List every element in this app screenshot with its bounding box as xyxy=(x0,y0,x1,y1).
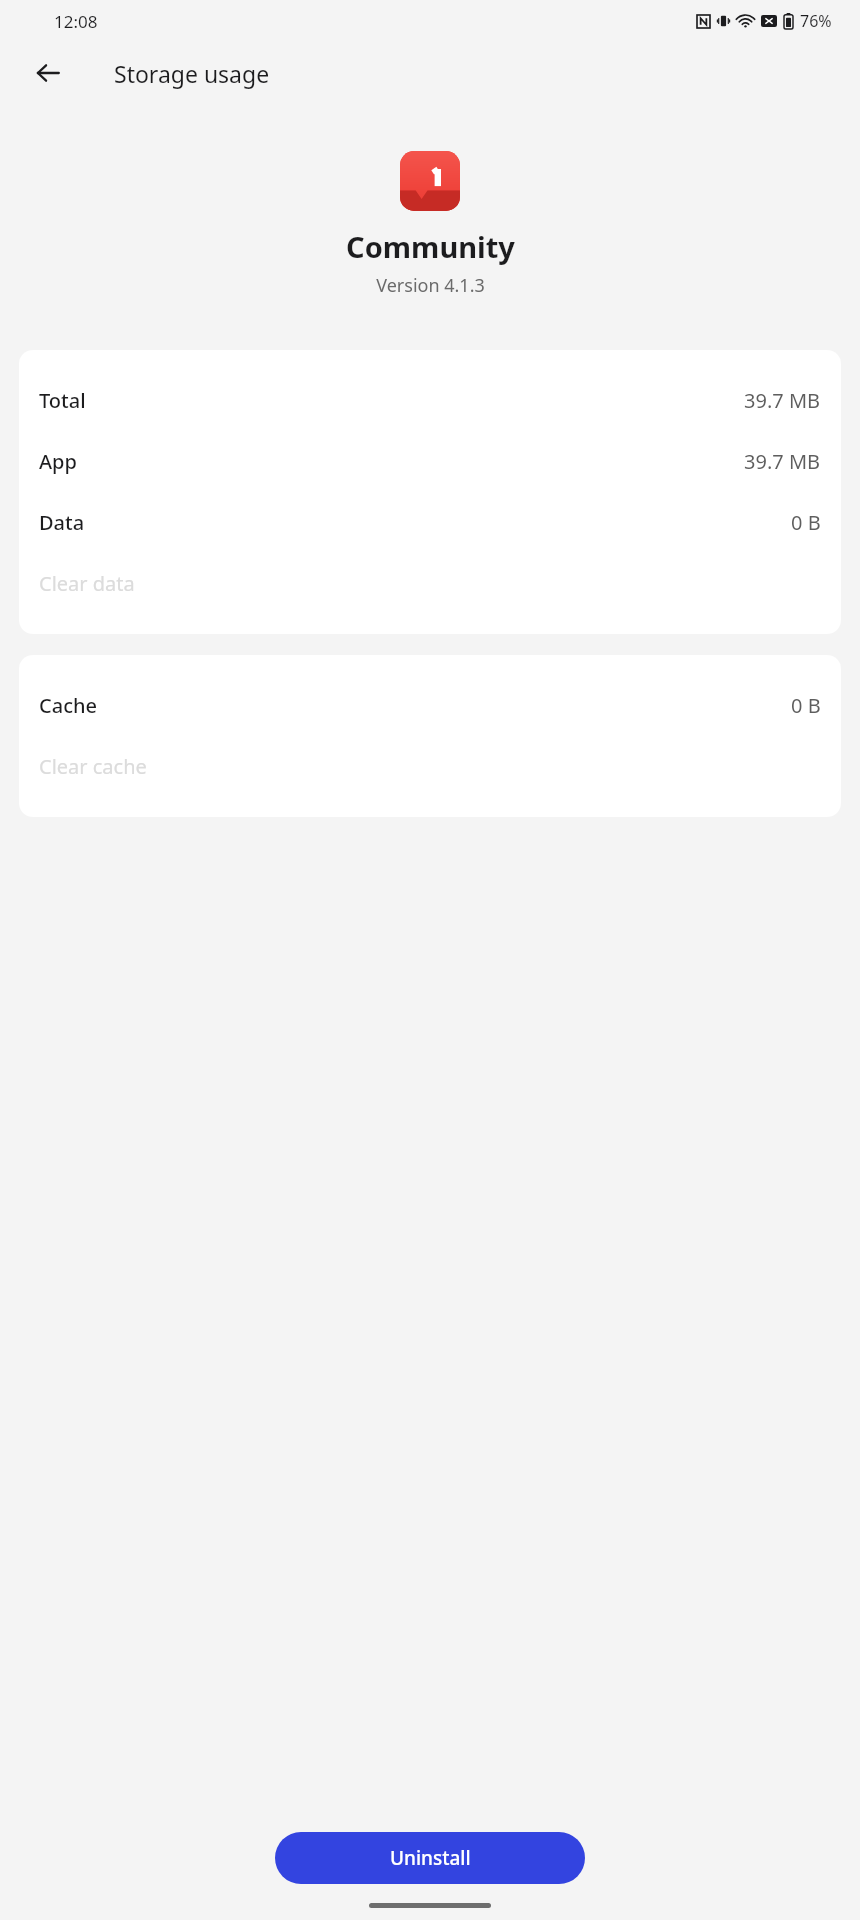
staticText: 0 B xyxy=(791,509,821,536)
staticText: Cache xyxy=(39,692,97,719)
staticText: 12:08 xyxy=(54,10,98,33)
button[interactable]: Clear data xyxy=(19,553,841,614)
button[interactable]: Uninstall xyxy=(275,1832,585,1884)
button[interactable]: Total xyxy=(19,370,841,431)
button[interactable]: Cache xyxy=(19,675,841,736)
staticText: Clear cache xyxy=(39,753,147,780)
staticText: 76% xyxy=(800,10,832,32)
button[interactable]: Data xyxy=(19,492,841,553)
button[interactable]: Clear cache xyxy=(19,736,841,797)
staticText: Clear data xyxy=(39,570,135,597)
button[interactable]: Back xyxy=(20,45,76,101)
staticText: 0 B xyxy=(791,692,821,719)
staticText: 39.7 MB xyxy=(744,448,821,475)
staticText: Uninstall xyxy=(390,1845,471,1871)
staticText: Data xyxy=(39,509,85,536)
staticText: Total xyxy=(39,387,86,414)
staticText: Version 4.1.3 xyxy=(376,273,485,298)
button[interactable]: App xyxy=(19,431,841,492)
staticText: Storage usage xyxy=(114,58,270,89)
staticText: App xyxy=(39,448,77,475)
staticText: Community xyxy=(346,227,515,266)
staticText: 39.7 MB xyxy=(744,387,821,414)
